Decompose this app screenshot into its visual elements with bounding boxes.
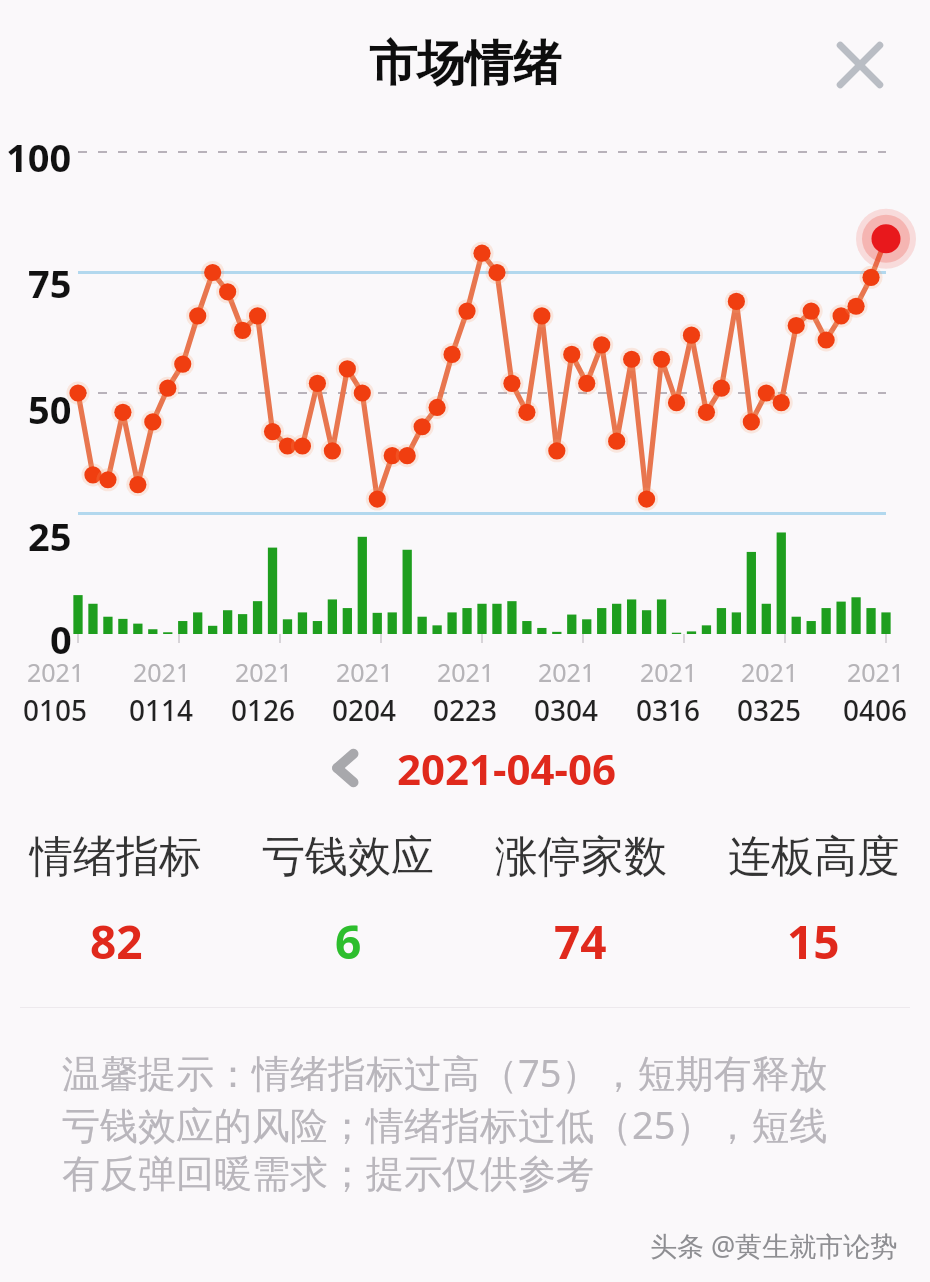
staticText: 0 — [50, 613, 72, 665]
staticText: 100 — [6, 131, 72, 183]
staticText: 0316 — [636, 691, 701, 729]
staticText: 2021 — [538, 655, 596, 689]
staticText: 温馨提示：情绪指标过高（75），短期有释放 — [62, 1046, 828, 1098]
button[interactable]: 连板高度 — [697, 830, 930, 973]
button[interactable]: 2021-04-06 — [397, 740, 617, 797]
staticText: 25 — [28, 510, 72, 562]
staticText: 市场情绪 — [369, 34, 561, 94]
staticText: 2021 — [640, 655, 698, 689]
staticText: 2021 — [741, 655, 799, 689]
staticText: 2021 — [133, 655, 191, 689]
staticText: 15 — [787, 910, 840, 973]
staticText: 6 — [335, 910, 362, 973]
staticText: 连板高度 — [728, 830, 900, 884]
staticText: 0126 — [231, 691, 296, 729]
staticText: 2021 — [336, 655, 394, 689]
button[interactable]: Previous day — [313, 735, 379, 801]
staticText: 0114 — [129, 691, 194, 729]
staticText: 75 — [28, 257, 72, 309]
staticText: 头条 @黄生就市论势 — [650, 1227, 898, 1264]
button[interactable]: 亏钱效应 — [232, 830, 464, 973]
staticText: 有反弹回暖需求；提示仅供参考 — [62, 1150, 594, 1198]
staticText: 0223 — [433, 691, 498, 729]
staticText: 2021 — [437, 655, 495, 689]
staticText: 涨停家数 — [495, 830, 667, 884]
staticText: 0304 — [534, 691, 599, 729]
staticText: 0406 — [843, 691, 908, 729]
staticText: 0325 — [737, 691, 802, 729]
staticText: 0204 — [332, 691, 397, 729]
staticText: 情绪指标 — [30, 830, 202, 884]
staticText: 0105 — [23, 691, 88, 729]
staticText: 亏钱效应 — [262, 830, 434, 884]
staticText: 亏钱效应的风险；情绪指标过低（25），短线 — [62, 1098, 828, 1150]
staticText: 2021 — [27, 655, 85, 689]
staticText: 2021 — [847, 655, 905, 689]
staticText: 74 — [554, 910, 607, 973]
button[interactable]: 涨停家数 — [464, 830, 697, 973]
staticText: 50 — [28, 383, 72, 435]
button[interactable]: Close — [826, 31, 894, 99]
staticText: 82 — [90, 910, 143, 973]
staticText: 2021 — [235, 655, 293, 689]
button[interactable]: 情绪指标 — [0, 830, 232, 973]
